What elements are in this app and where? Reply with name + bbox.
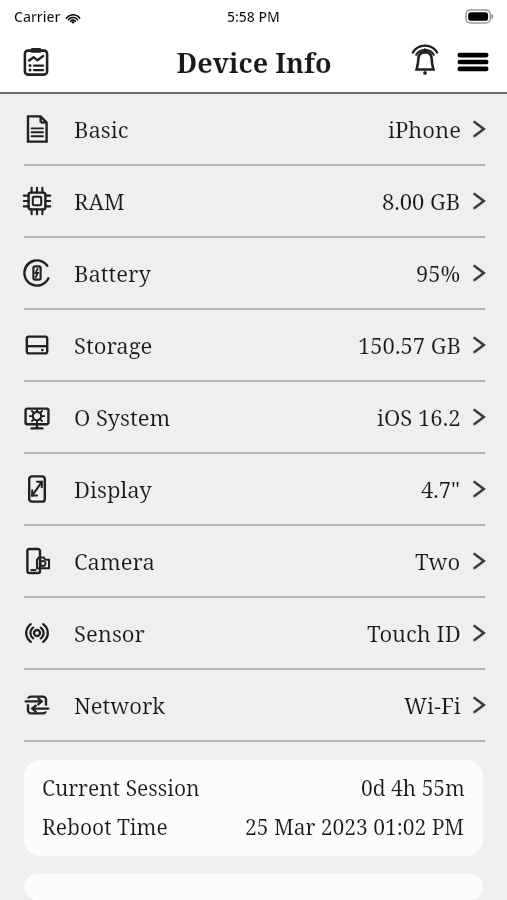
staticText: 150.57 GB (358, 330, 461, 360)
button[interactable]: Display (0, 454, 507, 524)
button[interactable]: Current Session (24, 760, 483, 856)
staticText: 95% (416, 258, 461, 288)
staticText: RAM (74, 186, 125, 216)
staticText: Basic (74, 114, 129, 144)
staticText: Touch ID (367, 618, 461, 648)
staticText: Carrier (14, 7, 61, 26)
staticText: 25 Mar 2023 01:02 PM (245, 813, 465, 842)
staticText: 0d 4h 55m (361, 774, 465, 803)
staticText: 5:58 PM (227, 7, 280, 26)
button[interactable]: Sensor (0, 598, 507, 668)
button[interactable]: RAM (0, 166, 507, 236)
staticText: Current Session (42, 774, 200, 803)
button[interactable]: Notifications (401, 38, 449, 86)
button[interactable]: Network (0, 670, 507, 740)
staticText: Battery (74, 258, 151, 288)
button[interactable]: Battery (0, 238, 507, 308)
staticText: Camera (74, 546, 155, 576)
staticText: Device Info (176, 44, 332, 81)
staticText: Sensor (74, 618, 145, 648)
button[interactable]: O System (0, 382, 507, 452)
staticText: Wi-Fi (404, 690, 461, 720)
staticText: 8.00 GB (382, 186, 461, 216)
staticText: O System (74, 402, 171, 432)
button[interactable]: Camera (0, 526, 507, 596)
staticText: Display (74, 474, 152, 504)
button[interactable]: Menu (449, 38, 497, 86)
button[interactable]: Basic (0, 94, 507, 164)
button[interactable]: Storage (0, 310, 507, 380)
staticText: Storage (74, 330, 153, 360)
staticText: Reboot Time (42, 813, 168, 842)
staticText: iOS 16.2 (377, 402, 461, 432)
staticText: iPhone (388, 114, 461, 144)
staticText: Two (415, 546, 461, 576)
staticText: 4.7" (421, 474, 461, 504)
button[interactable]: Reports (14, 40, 58, 84)
staticText: Network (74, 690, 166, 720)
